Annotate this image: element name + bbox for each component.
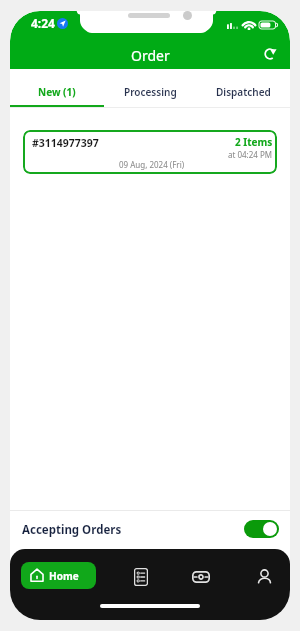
button[interactable]: Home [21,562,96,589]
button[interactable]: Profile [254,563,274,591]
staticText: New (1) [38,85,76,99]
button[interactable]: New (1) [10,69,104,108]
button[interactable]: Payments [191,563,211,591]
button[interactable]: Refresh [257,41,283,67]
staticText: 2 Items [235,135,273,149]
staticText: at 04:24 PM [228,149,273,160]
staticText: 4:24 [31,15,55,31]
button[interactable]: #3114977397 [23,130,277,174]
staticText: #3114977397 [32,136,99,150]
staticText: 09 Aug, 2024 (Fri) [119,159,185,170]
staticText: Home [49,569,79,583]
staticText: Processing [124,85,177,99]
staticText: Accepting Orders [22,522,122,538]
button[interactable]: Orders [131,563,151,591]
staticText: Order [131,46,170,65]
staticText: Dispatched [216,85,271,99]
button[interactable]: Processing [104,69,197,108]
button[interactable]: Dispatched [197,69,290,108]
button[interactable]: Accepting Orders toggle [244,520,279,538]
